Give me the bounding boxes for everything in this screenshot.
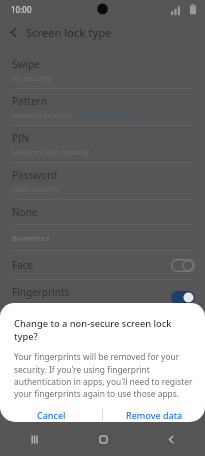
staticText: Medium security,: [12, 110, 75, 120]
staticText: Swipe: [12, 57, 40, 71]
button[interactable]: Back: [137, 422, 205, 456]
staticText: High security: [12, 184, 59, 194]
staticText: Your fingerprints will be removed for yo…: [14, 351, 194, 399]
staticText: Remove data: [126, 409, 183, 421]
staticText: Face: [12, 258, 34, 272]
button[interactable]: PIN: [0, 126, 205, 162]
staticText: 10:00: [11, 4, 32, 15]
staticText: Cancel: [37, 409, 66, 421]
staticText: Registered: [12, 300, 50, 310]
staticText: Biometrics: [12, 233, 50, 243]
button[interactable]: Face: [0, 251, 205, 279]
button[interactable]: Recent apps: [0, 422, 69, 456]
button[interactable]: Fingerprints: [0, 280, 205, 314]
button[interactable]: None: [0, 200, 205, 224]
button[interactable]: Home: [69, 422, 137, 456]
staticText: PIN: [12, 131, 30, 145]
button[interactable]: Pattern: [0, 89, 205, 125]
staticText: Password: [12, 168, 58, 182]
staticText: Current lock type: [75, 110, 137, 120]
button[interactable]: Cancel: [0, 408, 102, 422]
staticText: Change to a non-secure screen lock type?: [14, 317, 193, 343]
staticText: Screen lock type: [26, 25, 112, 40]
button[interactable]: Password: [0, 163, 205, 199]
staticText: No security: [12, 73, 52, 83]
staticText: None: [12, 205, 38, 219]
staticText: Pattern: [12, 94, 47, 108]
staticText: Medium-high security: [12, 147, 90, 157]
button[interactable]: Remove data: [103, 408, 205, 422]
button[interactable]: Navigate up: [0, 19, 26, 45]
staticText: Fingerprints: [12, 285, 70, 299]
button[interactable]: Swipe: [0, 52, 205, 88]
